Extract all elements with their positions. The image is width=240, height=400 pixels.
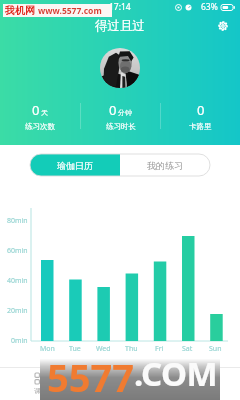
button[interactable]: 0 xyxy=(81,101,160,131)
staticText: 17:14 xyxy=(109,1,131,13)
button[interactable]: 课程 xyxy=(0,368,80,400)
staticText: 分钟 xyxy=(118,108,132,117)
staticText: 我机网 xyxy=(5,4,35,17)
staticText: 60min xyxy=(7,246,28,256)
button[interactable]: 发现 xyxy=(80,368,160,400)
staticText: Sat xyxy=(182,344,193,354)
staticText: 课程 xyxy=(34,387,47,395)
staticText: 练习时长 xyxy=(106,122,136,131)
staticText: 40min xyxy=(7,276,28,286)
staticText: Fri xyxy=(155,344,164,354)
button[interactable]: 0 xyxy=(0,101,80,131)
staticText: 20min xyxy=(7,306,28,316)
staticText: 我的练习 xyxy=(147,160,183,171)
button[interactable]: Settings xyxy=(213,16,233,36)
staticText: 0 xyxy=(32,101,40,119)
staticText: 5577 xyxy=(47,351,134,392)
staticText: .COM xyxy=(134,351,217,392)
staticText: Mon xyxy=(40,344,55,354)
staticText: 瑜伽日历 xyxy=(57,160,93,171)
staticText: 0 xyxy=(197,101,205,119)
staticText: 63% xyxy=(201,1,218,13)
staticText: 0 xyxy=(109,101,117,119)
staticText: 天 xyxy=(41,108,48,117)
button[interactable]: 瑜伽日历 xyxy=(30,154,120,176)
staticText: 0min xyxy=(11,336,28,346)
staticText: 得过且过 xyxy=(95,18,145,34)
staticText: Tue xyxy=(69,344,81,354)
staticText: 80min xyxy=(7,216,28,226)
button[interactable]: 我的 xyxy=(160,368,240,400)
staticText: 练习次数 xyxy=(25,122,55,131)
staticText: 卡路里 xyxy=(189,122,212,131)
button[interactable]: 我的练习 xyxy=(120,154,210,176)
staticText: Thu xyxy=(125,344,138,354)
staticText: Wed xyxy=(96,344,111,354)
staticText: Sun xyxy=(209,344,222,354)
staticText: 发现 xyxy=(114,387,127,395)
button[interactable]: Profile avatar xyxy=(100,48,140,88)
staticText: www.5577.com xyxy=(38,5,102,17)
button[interactable]: 0 xyxy=(161,101,240,131)
